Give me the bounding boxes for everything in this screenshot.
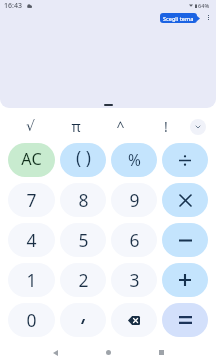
other: Divide	[179, 155, 191, 166]
button[interactable]: Minus	[162, 223, 208, 257]
button[interactable]: !	[143, 112, 188, 142]
button[interactable]: Back	[48, 346, 62, 359]
button[interactable]: Plus	[162, 263, 208, 297]
button[interactable]: √	[8, 112, 53, 142]
button[interactable]: 2	[60, 263, 106, 297]
button[interactable]: Home	[101, 346, 115, 359]
staticText: 9	[129, 188, 140, 212]
button[interactable]: 3	[111, 263, 157, 297]
button[interactable]: Recent apps	[154, 346, 168, 359]
staticText: 1	[26, 268, 37, 292]
button[interactable]: Backspace	[111, 303, 157, 337]
staticText: 64%	[198, 2, 210, 10]
button[interactable]: ( )	[60, 143, 106, 177]
staticText: 16:43	[4, 1, 22, 11]
staticText: AC	[21, 148, 42, 170]
button[interactable]	[60, 303, 106, 337]
staticText: π	[71, 117, 81, 136]
staticText: √	[26, 118, 35, 134]
button[interactable]: 4	[8, 223, 55, 257]
button[interactable]: Multiply	[162, 183, 208, 217]
staticText: ^	[116, 117, 125, 136]
staticText: %	[128, 149, 141, 170]
button[interactable]: Equals	[162, 303, 208, 337]
staticText: ( )	[76, 146, 91, 170]
other: Backspace	[128, 316, 140, 325]
staticText: 6	[129, 228, 140, 252]
other: Plus	[179, 274, 191, 286]
button[interactable]: 0	[8, 303, 55, 337]
staticText: 7	[26, 188, 37, 212]
button[interactable]: ^	[98, 112, 143, 142]
button[interactable]: π	[53, 112, 98, 142]
button[interactable]: 6	[111, 223, 157, 257]
staticText: 3	[129, 268, 140, 292]
staticText: 0	[26, 308, 37, 332]
other: Multiply	[180, 195, 191, 206]
staticText: !	[164, 117, 168, 136]
staticText: 2	[78, 268, 89, 292]
button[interactable]: Divide	[162, 143, 208, 177]
button[interactable]: More options	[204, 12, 213, 24]
button[interactable]: Scegli tema	[160, 13, 197, 23]
staticText: Scegli tema	[163, 15, 194, 22]
other: Minus	[179, 239, 192, 242]
button[interactable]: 9	[111, 183, 157, 217]
button[interactable]: 1	[8, 263, 55, 297]
button[interactable]: 8	[60, 183, 106, 217]
staticText: 4	[26, 228, 37, 252]
button[interactable]: AC	[8, 143, 55, 177]
staticText: 5	[78, 228, 89, 252]
button[interactable]: %	[111, 143, 157, 177]
other: Equals	[179, 316, 192, 324]
button[interactable]: 5	[60, 223, 106, 257]
button[interactable]: 7	[8, 183, 55, 217]
button[interactable]: Expand keypad	[190, 119, 206, 135]
staticText: 8	[78, 188, 89, 212]
